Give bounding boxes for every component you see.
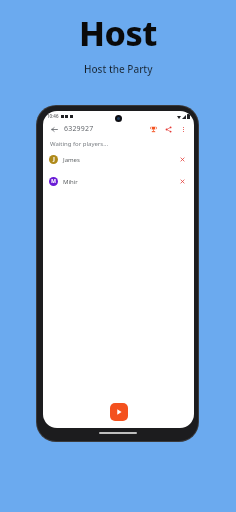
button[interactable]: More options xyxy=(177,123,189,135)
button[interactable]: M xyxy=(43,175,194,188)
staticText: Mihir xyxy=(63,178,78,186)
staticText: James xyxy=(63,156,80,164)
button[interactable]: Remove James xyxy=(177,154,188,165)
button[interactable]: Share xyxy=(162,123,174,135)
button[interactable]: Start game xyxy=(110,403,128,421)
staticText: 10:46 xyxy=(47,113,59,119)
button[interactable]: Leaderboard xyxy=(147,123,159,135)
staticText: Waiting for players... xyxy=(50,140,109,148)
staticText: Host the Party xyxy=(84,62,153,76)
staticText: Host xyxy=(79,10,157,56)
staticText: 6329927 xyxy=(64,124,94,134)
button[interactable]: J xyxy=(43,153,194,166)
staticText: M xyxy=(51,178,56,185)
button[interactable]: Remove Mihir xyxy=(177,176,188,187)
button[interactable]: Back xyxy=(48,123,60,135)
staticText: J xyxy=(53,156,55,163)
